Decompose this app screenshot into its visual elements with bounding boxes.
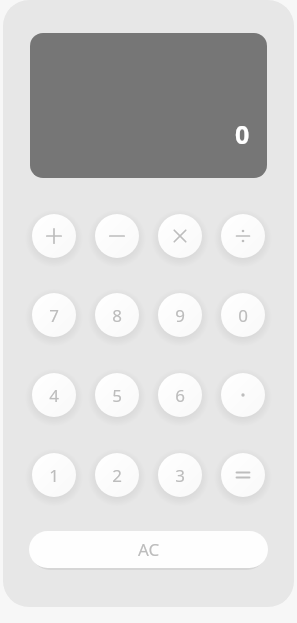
button[interactable]: 4	[32, 373, 76, 417]
staticText: 2	[112, 464, 122, 487]
button[interactable]: 9	[158, 293, 202, 337]
button[interactable]: Plus	[32, 214, 76, 258]
button[interactable]: AC	[29, 531, 268, 568]
button[interactable]: 3	[158, 453, 202, 497]
staticText: 5	[112, 384, 122, 407]
staticText: 4	[49, 384, 59, 407]
button[interactable]: 6	[158, 373, 202, 417]
button[interactable]: Multiply	[158, 214, 202, 258]
staticText: 7	[49, 304, 59, 327]
button[interactable]: 1	[32, 453, 76, 497]
button[interactable]: Minus	[95, 214, 139, 258]
button[interactable]: 7	[32, 293, 76, 337]
button[interactable]: Equals	[221, 453, 265, 497]
staticText: 0	[235, 117, 250, 151]
staticText: 8	[112, 304, 122, 327]
staticText: 1	[49, 464, 59, 487]
staticText: 6	[175, 384, 185, 407]
button[interactable]: 0	[221, 293, 265, 337]
staticText: 3	[175, 464, 185, 487]
button[interactable]: 5	[95, 373, 139, 417]
button[interactable]: Decimal point	[221, 373, 265, 417]
button[interactable]: Divide	[221, 214, 265, 258]
staticText: 0	[238, 304, 248, 327]
staticText: AC	[138, 538, 160, 561]
button[interactable]: 8	[95, 293, 139, 337]
button[interactable]: 2	[95, 453, 139, 497]
staticText: 9	[175, 304, 185, 327]
